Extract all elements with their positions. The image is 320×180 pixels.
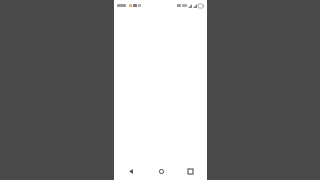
button[interactable]: Back	[119, 163, 143, 180]
button[interactable]: Home	[149, 163, 173, 180]
button[interactable]: Recent apps	[178, 163, 202, 180]
